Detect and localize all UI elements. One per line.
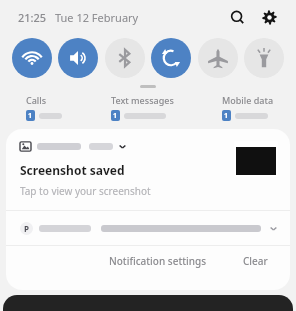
staticText: Text messages (111, 94, 174, 106)
button[interactable]: Settings (256, 4, 282, 30)
button[interactable]: Auto rotate (151, 38, 191, 78)
button[interactable]: Sound (58, 38, 98, 78)
staticText: 21:25 (18, 10, 47, 25)
button[interactable]: Notification settings (103, 250, 213, 272)
button[interactable]: Calls (26, 94, 66, 121)
staticText: 1 (113, 111, 118, 121)
button[interactable]: P (6, 211, 290, 245)
staticText: Notification settings (109, 254, 207, 268)
button[interactable]: Flashlight (244, 38, 284, 78)
button[interactable]: Mobile data (222, 94, 278, 121)
staticText: P (24, 223, 29, 234)
staticText: 1 (224, 111, 229, 121)
staticText: 1 (28, 111, 33, 121)
staticText: Tap to view your screenshot (20, 184, 151, 198)
staticText: Calls (26, 94, 47, 106)
button[interactable]: Search (224, 4, 250, 30)
button[interactable]: Wi-Fi (12, 38, 52, 78)
button[interactable]: Screenshot saved (6, 129, 290, 210)
button[interactable]: Text messages (111, 94, 178, 121)
button[interactable]: Airplane mode (198, 38, 238, 78)
staticText: Screenshot saved (20, 162, 125, 178)
staticText: Clear (243, 254, 268, 268)
button[interactable]: Clear (237, 250, 274, 272)
staticText: Tue 12 February (55, 10, 139, 25)
staticText: Mobile data (222, 94, 274, 106)
button[interactable]: Bluetooth (105, 38, 145, 78)
